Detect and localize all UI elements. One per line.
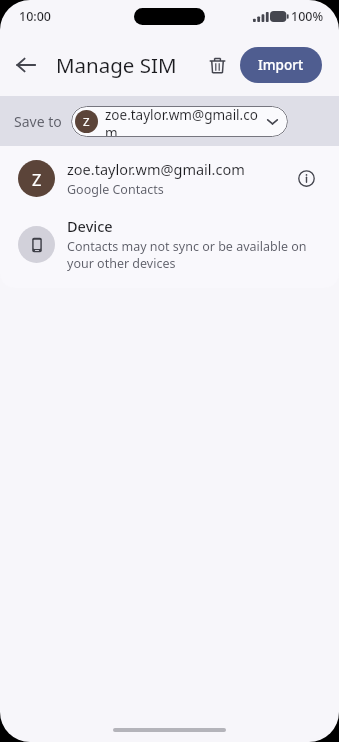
button[interactable]: Device <box>0 210 339 288</box>
button[interactable]: Delete <box>199 47 235 83</box>
button[interactable]: Import <box>240 47 322 83</box>
button[interactable]: Account info <box>291 163 321 193</box>
staticText: Manage SIM <box>56 51 177 79</box>
button[interactable]: Z <box>0 146 339 210</box>
staticText: zoe.taylor.wm@gmail.com <box>67 159 245 179</box>
staticText: Z <box>32 168 42 190</box>
button[interactable]: Back <box>6 45 45 84</box>
staticText: Device <box>67 216 113 236</box>
staticText: 10:00 <box>19 8 52 25</box>
button[interactable]: Z <box>71 106 288 137</box>
staticText: Z <box>83 114 90 130</box>
staticText: Import <box>258 56 304 74</box>
staticText: Save to <box>14 112 62 131</box>
staticText: 100% <box>291 8 324 25</box>
staticText: zoe.taylor.wm@gmail.com <box>105 106 262 137</box>
staticText: Contacts may not sync or be available on… <box>67 238 309 272</box>
staticText: Google Contacts <box>67 181 164 198</box>
